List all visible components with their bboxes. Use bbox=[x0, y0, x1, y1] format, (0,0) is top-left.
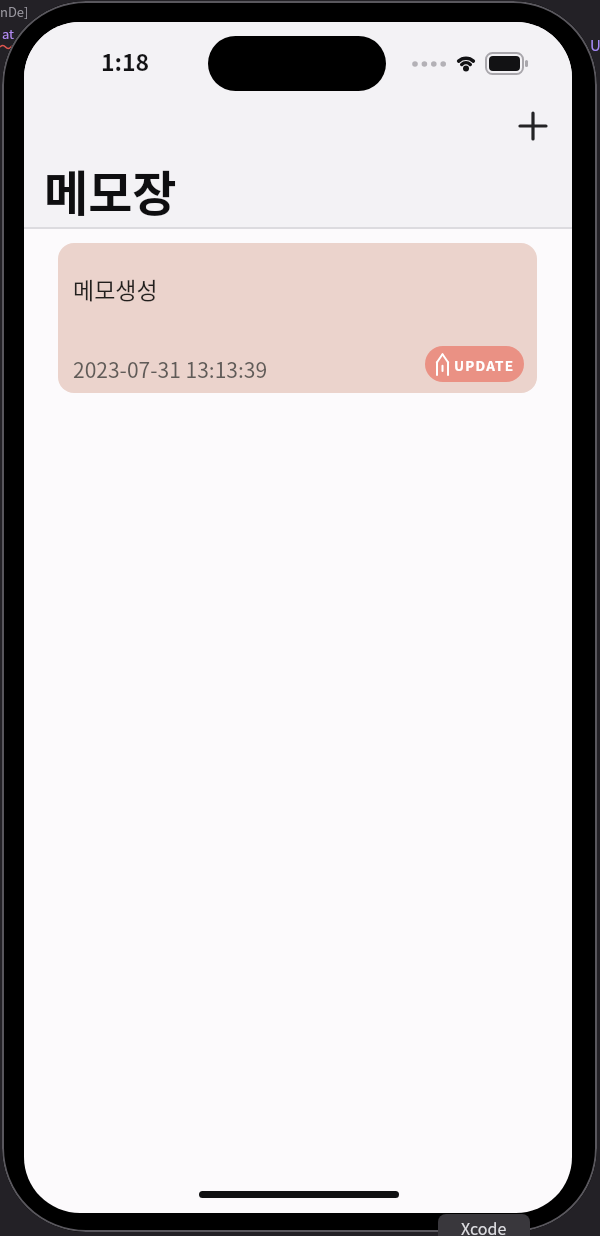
staticText: U bbox=[590, 34, 600, 56]
staticText: 1:18 bbox=[101, 44, 150, 77]
staticText: UPDATE bbox=[454, 355, 515, 375]
staticText: 2023-07-31 13:13:39 bbox=[73, 354, 268, 384]
staticText: at bbox=[2, 24, 15, 43]
staticText: 메모생성 bbox=[73, 272, 158, 305]
button[interactable]: 메모생성 bbox=[58, 243, 537, 393]
button[interactable] bbox=[507, 100, 559, 152]
button[interactable]: UPDATE bbox=[425, 346, 524, 382]
staticText: Xcode bbox=[461, 1216, 507, 1236]
staticText: nDe] bbox=[0, 2, 29, 21]
staticText: 메모장 bbox=[44, 155, 177, 225]
